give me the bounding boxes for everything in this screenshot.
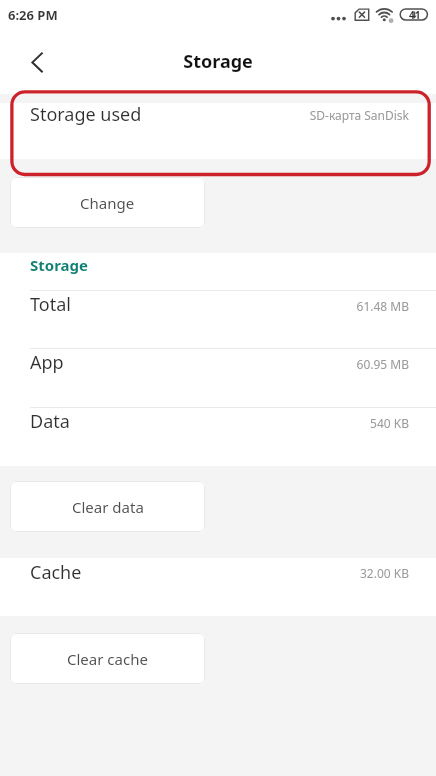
- staticText: 60.95 MB: [0, 356, 409, 372]
- staticText: Clear cache: [67, 649, 148, 669]
- staticText: Storage: [30, 255, 88, 275]
- staticText: 540 KB: [0, 415, 409, 431]
- staticText: Total: [30, 292, 71, 317]
- staticText: Storage used: [30, 102, 142, 127]
- staticText: App: [30, 350, 64, 375]
- button[interactable]: Data: [0, 407, 436, 465]
- staticText: 61.48 MB: [0, 298, 409, 314]
- staticText: 6:26 PM: [8, 6, 58, 24]
- staticText: 41: [409, 8, 421, 22]
- button[interactable]: Back: [17, 42, 59, 84]
- staticText: Clear data: [72, 497, 144, 517]
- button[interactable]: Cache: [0, 558, 436, 616]
- staticText: Change: [80, 193, 135, 213]
- button[interactable]: Clear data: [10, 481, 205, 532]
- button[interactable]: Clear cache: [10, 633, 205, 684]
- button[interactable]: Total: [0, 290, 436, 348]
- button[interactable]: Change: [10, 177, 205, 228]
- staticText: 32.00 KB: [0, 565, 409, 581]
- staticText: SD-карта SanDisk: [0, 107, 409, 123]
- button[interactable]: App: [0, 348, 436, 406]
- button[interactable]: Storage used: [0, 103, 436, 159]
- staticText: Data: [30, 409, 70, 434]
- staticText: Cache: [30, 560, 82, 585]
- staticText: Storage: [0, 49, 436, 74]
